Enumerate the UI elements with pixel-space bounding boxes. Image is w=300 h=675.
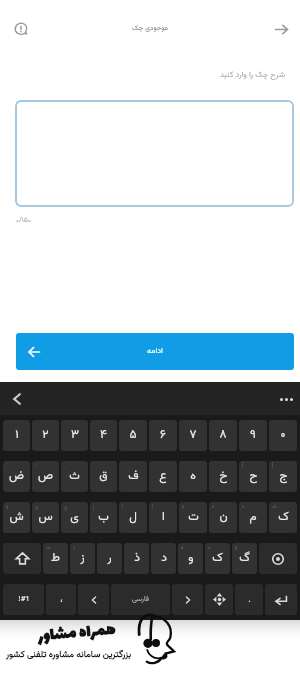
button[interactable]: Enter (265, 584, 297, 615)
staticText: ص (38, 467, 53, 486)
staticText: أ (122, 503, 124, 511)
button[interactable]: ذ (124, 543, 149, 574)
button[interactable]: ی (61, 502, 88, 533)
staticText: فارسی (132, 594, 149, 605)
staticText: ۴ (100, 426, 107, 445)
staticText: ژ (73, 544, 75, 552)
button[interactable]: ش (3, 502, 30, 533)
staticText: ة (182, 503, 185, 511)
button[interactable]: . (235, 584, 263, 615)
button[interactable]: Collapse keyboard (4, 386, 30, 412)
button[interactable]: Previous (78, 584, 109, 615)
button[interactable]: ب (90, 502, 117, 533)
staticText: ک (212, 549, 223, 568)
button[interactable]: ۷ (179, 420, 207, 451)
button[interactable]: ه (179, 461, 207, 492)
staticText: گ (239, 549, 250, 568)
button[interactable]: ادامه (16, 333, 294, 370)
button[interactable]: ث (61, 461, 88, 492)
button[interactable]: ۳ (61, 420, 88, 451)
button[interactable]: Help (7, 15, 35, 43)
button[interactable]: ت (179, 502, 207, 533)
button[interactable]: Shift (3, 543, 41, 574)
staticText: ي (64, 503, 68, 511)
staticText: ح (249, 467, 258, 486)
staticText: ء (208, 544, 211, 552)
staticText: ط (51, 549, 60, 568)
staticText: ۱ (15, 426, 19, 445)
button[interactable]: ج (269, 461, 297, 492)
staticText: ع (159, 467, 167, 486)
staticText: ۹ (250, 426, 256, 445)
button[interactable]: گ (232, 543, 257, 574)
button[interactable]: خ (209, 461, 237, 492)
staticText: !#1 (18, 593, 30, 606)
button[interactable]: ا (149, 502, 177, 533)
staticText: ۳ (71, 426, 79, 445)
button[interactable]: ق (90, 461, 117, 492)
button[interactable]: ح (239, 461, 267, 492)
button[interactable]: ، (46, 584, 76, 615)
button[interactable] (15, 100, 294, 207)
staticText: [ (272, 462, 274, 470)
staticText: ك (46, 544, 51, 552)
button[interactable]: Next (172, 584, 203, 615)
button[interactable]: س (32, 502, 59, 533)
button[interactable]: فارسی (111, 584, 170, 615)
button[interactable]: More options (279, 386, 294, 412)
staticText: بزرگترین سامانه مشاوره تلفنی کشور (6, 648, 132, 662)
staticText: م (249, 508, 257, 527)
staticText: » (212, 503, 215, 511)
button[interactable]: ۲ (32, 420, 59, 451)
button[interactable]: ۵ (119, 420, 147, 451)
staticText: . (248, 593, 251, 607)
staticText: ذ (134, 549, 140, 568)
staticText: ] (242, 462, 244, 470)
button[interactable]: ف (119, 461, 147, 492)
button[interactable]: ع (149, 461, 177, 492)
staticText: ۀ (181, 544, 184, 552)
button[interactable]: ۰ (269, 420, 297, 451)
button[interactable]: و (178, 543, 203, 574)
button[interactable]: م (239, 502, 267, 533)
button[interactable]: ۱ (3, 420, 30, 451)
button[interactable]: ط (43, 543, 68, 574)
staticText: ، (60, 593, 63, 607)
other: Move cursor (213, 593, 226, 606)
staticText: ه (190, 467, 196, 486)
button[interactable]: Move cursor (205, 584, 233, 615)
staticText: ۲ (42, 426, 49, 445)
button[interactable]: ض (3, 461, 30, 492)
staticText: ۶ (160, 426, 166, 445)
staticText: ن (219, 508, 228, 527)
button[interactable]: ۹ (239, 420, 267, 451)
button[interactable]: ک (269, 502, 297, 533)
button[interactable]: ن (209, 502, 237, 533)
staticText: ۷ (189, 426, 197, 445)
button[interactable]: ک (205, 543, 230, 574)
staticText: ی (70, 508, 79, 527)
button[interactable]: ل (119, 502, 147, 533)
button[interactable]: !#1 (3, 584, 44, 615)
staticText: ض (9, 467, 24, 486)
staticText: موجودی چک (132, 23, 169, 34)
staticText: ئ (35, 503, 39, 511)
other: Previous (89, 595, 99, 605)
staticText: ۰/۱۵۰ (16, 215, 31, 226)
other: Next (183, 595, 193, 605)
button[interactable]: ۸ (209, 420, 237, 451)
button[interactable]: ۶ (149, 420, 177, 451)
button[interactable]: د (151, 543, 176, 574)
staticText: ش (9, 508, 24, 527)
button[interactable]: Backspace (259, 543, 297, 574)
button[interactable]: ر (97, 543, 122, 574)
other: Enter (273, 592, 289, 608)
button[interactable]: ز (70, 543, 95, 574)
staticText: د (161, 549, 167, 568)
button[interactable]: Back (267, 15, 295, 43)
staticText: ب (98, 508, 109, 527)
button[interactable]: ص (32, 461, 59, 492)
button[interactable]: ۴ (90, 420, 117, 451)
staticText: ث (69, 467, 80, 486)
staticText: ک (278, 508, 289, 527)
